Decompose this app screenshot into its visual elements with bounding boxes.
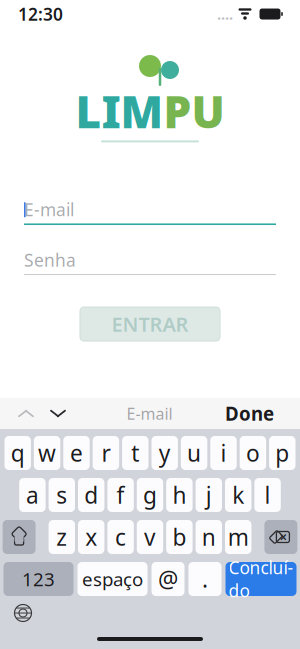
button[interactable]: t xyxy=(122,436,148,470)
staticText: v xyxy=(144,522,156,552)
staticText: o xyxy=(246,438,260,468)
button[interactable]: e xyxy=(63,436,90,470)
button[interactable]: espaço xyxy=(77,562,147,596)
staticText: x xyxy=(85,522,97,552)
button[interactable]: r xyxy=(93,436,119,470)
staticText: . xyxy=(202,564,208,594)
button[interactable]: n xyxy=(196,520,222,554)
staticText: k xyxy=(232,480,244,510)
staticText: p xyxy=(275,438,289,468)
button[interactable]: j xyxy=(196,478,222,512)
staticText: u xyxy=(187,438,201,468)
staticText: espaço xyxy=(82,567,143,591)
staticText: b xyxy=(172,522,186,552)
staticText: PU xyxy=(163,82,224,140)
button[interactable]: v xyxy=(137,520,163,554)
staticText: t xyxy=(131,438,139,468)
button[interactable]: f xyxy=(107,478,134,512)
staticText: a xyxy=(26,480,39,510)
button[interactable]: i xyxy=(210,436,237,470)
staticText: i xyxy=(220,438,226,468)
button[interactable]: o xyxy=(240,436,266,470)
staticText: Senha xyxy=(24,248,76,271)
staticText: ENTRAR xyxy=(111,311,188,337)
button[interactable]: d xyxy=(78,478,104,512)
staticText: s xyxy=(56,480,67,510)
button[interactable]: s xyxy=(49,478,75,512)
staticText: 12:30 xyxy=(18,2,63,25)
button[interactable]: h xyxy=(166,478,193,512)
button[interactable]: q xyxy=(4,436,31,470)
button[interactable]: c xyxy=(107,520,134,554)
staticText: Concluído xyxy=(228,556,293,602)
button[interactable]: p xyxy=(269,436,295,470)
button[interactable]: g xyxy=(137,478,163,512)
staticText: n xyxy=(202,522,216,552)
staticText: e xyxy=(70,438,83,468)
button[interactable]: Next field xyxy=(42,398,74,428)
staticText: Done xyxy=(225,401,274,426)
button[interactable]: a xyxy=(19,478,46,512)
staticText: × xyxy=(279,528,287,546)
staticText: h xyxy=(172,480,186,510)
button[interactable]: z xyxy=(49,520,75,554)
staticText: d xyxy=(84,480,98,510)
staticText: f xyxy=(117,480,125,510)
staticText: y xyxy=(159,438,171,468)
button[interactable]: b xyxy=(166,520,193,554)
button[interactable]: u xyxy=(181,436,207,470)
button[interactable]: Shift xyxy=(3,520,36,554)
button[interactable]: m xyxy=(225,520,251,554)
staticText: m xyxy=(228,522,249,552)
button[interactable]: Next keyboard xyxy=(8,600,38,626)
button[interactable]: Delete xyxy=(264,520,297,554)
button[interactable]: Done xyxy=(225,398,274,428)
staticText: 123 xyxy=(22,567,55,591)
staticText: E-mail xyxy=(126,403,172,424)
button[interactable]: . xyxy=(188,562,221,596)
button[interactable]: Previous field xyxy=(10,398,42,428)
staticText: r xyxy=(101,438,110,468)
staticText: l xyxy=(265,480,271,510)
button[interactable]: ENTRAR xyxy=(80,307,220,341)
staticText: j xyxy=(206,480,212,510)
staticText: LIM xyxy=(75,82,163,140)
staticText: z xyxy=(56,522,67,552)
button[interactable]: w xyxy=(34,436,60,470)
staticText: g xyxy=(143,480,157,510)
staticText: E-mail xyxy=(24,198,74,221)
staticText: .... xyxy=(217,4,233,24)
button[interactable]: y xyxy=(151,436,178,470)
staticText: q xyxy=(11,438,25,468)
button[interactable]: @ xyxy=(151,562,184,596)
staticText: @ xyxy=(158,564,178,594)
button[interactable]: l xyxy=(254,478,281,512)
button[interactable]: k xyxy=(225,478,251,512)
staticText: c xyxy=(115,522,126,552)
button[interactable]: x xyxy=(78,520,104,554)
button[interactable]: Concluído xyxy=(225,562,296,596)
staticText: w xyxy=(38,438,56,468)
button[interactable]: 123 xyxy=(3,562,73,596)
